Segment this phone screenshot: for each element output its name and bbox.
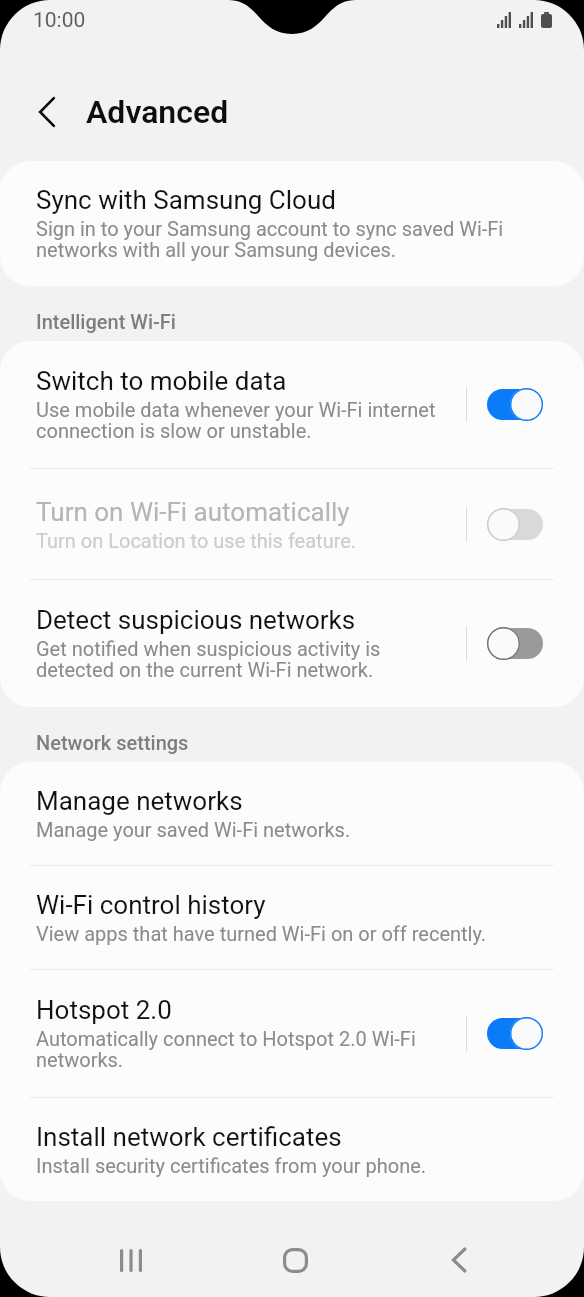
button[interactable]: Turn on Wi-Fi automatically bbox=[0, 469, 584, 579]
button[interactable]: Detect suspicious networks bbox=[0, 580, 584, 707]
staticText: Wi-Fi control history bbox=[36, 890, 266, 920]
button[interactable]: Manage networks bbox=[0, 762, 584, 865]
staticText: Turn on Wi-Fi automatically bbox=[36, 497, 350, 527]
staticText: Use mobile data whenever your Wi-Fi inte… bbox=[36, 398, 454, 443]
button[interactable]: Recent apps bbox=[90, 1223, 172, 1297]
button[interactable]: Back bbox=[418, 1223, 500, 1297]
staticText: Manage your saved Wi-Fi networks. bbox=[36, 818, 351, 841]
button[interactable]: Switch on bbox=[487, 388, 543, 421]
staticText: Network settings bbox=[36, 731, 189, 754]
staticText: Switch to mobile data bbox=[36, 366, 287, 396]
staticText: Automatically connect to Hotspot 2.0 Wi-… bbox=[36, 1027, 454, 1072]
staticText: Turn on Location to use this feature. bbox=[36, 529, 357, 552]
staticText: Install security certificates from your … bbox=[36, 1154, 427, 1177]
button[interactable]: Switch off bbox=[487, 508, 543, 541]
staticText: Sync with Samsung Cloud bbox=[36, 185, 336, 215]
button[interactable]: Navigate up bbox=[20, 85, 74, 139]
staticText: Sign in to your Samsung account to sync … bbox=[36, 217, 543, 262]
button[interactable]: Wi-Fi control history bbox=[0, 866, 584, 969]
button[interactable]: Switch off bbox=[487, 627, 543, 660]
button[interactable]: Switch to mobile data bbox=[0, 341, 584, 468]
button[interactable]: Switch on bbox=[487, 1017, 543, 1050]
staticText: Detect suspicious networks bbox=[36, 605, 356, 635]
button[interactable]: Install network certificates bbox=[0, 1098, 584, 1201]
button[interactable]: Hotspot 2.0 bbox=[0, 970, 584, 1097]
staticText: Install network certificates bbox=[36, 1122, 342, 1152]
staticText: Advanced bbox=[86, 93, 229, 131]
staticText: 10:00 bbox=[33, 8, 86, 33]
staticText: Intelligent Wi-Fi bbox=[36, 310, 176, 333]
staticText: Get notified when suspicious activity is… bbox=[36, 637, 454, 682]
staticText: Hotspot 2.0 bbox=[36, 995, 172, 1025]
button[interactable]: Sync with Samsung Cloud bbox=[0, 161, 584, 286]
button[interactable]: Home bbox=[254, 1223, 336, 1297]
staticText: View apps that have turned Wi-Fi on or o… bbox=[36, 922, 487, 945]
staticText: Manage networks bbox=[36, 786, 243, 816]
